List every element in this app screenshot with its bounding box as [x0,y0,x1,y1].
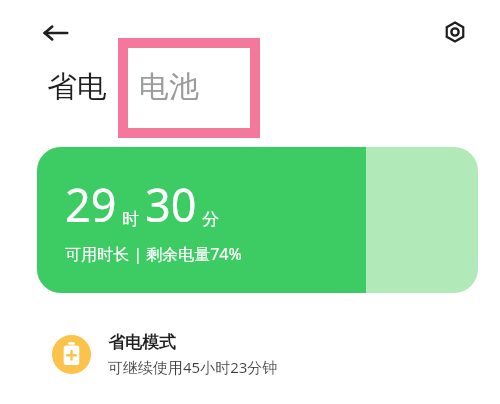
staticText: 可继续使用45小时23分钟 [108,357,278,377]
button[interactable]: Back [40,16,74,50]
staticText: 电池 [139,68,199,106]
staticText: 省电模式 [108,332,176,353]
staticText: 30 [145,174,197,235]
button[interactable]: Settings [438,15,472,49]
staticText: 省电 [47,68,107,106]
staticText: 时 [122,209,139,230]
button[interactable]: 29 [37,147,478,293]
button[interactable]: 省电 [47,68,107,106]
button[interactable]: 电池 [139,68,199,106]
staticText: 29 [65,174,117,235]
staticText: 分 [202,209,219,230]
staticText: 可用时长 | 剩余电量74% [65,243,242,265]
button[interactable]: 省电模式 [0,326,500,382]
